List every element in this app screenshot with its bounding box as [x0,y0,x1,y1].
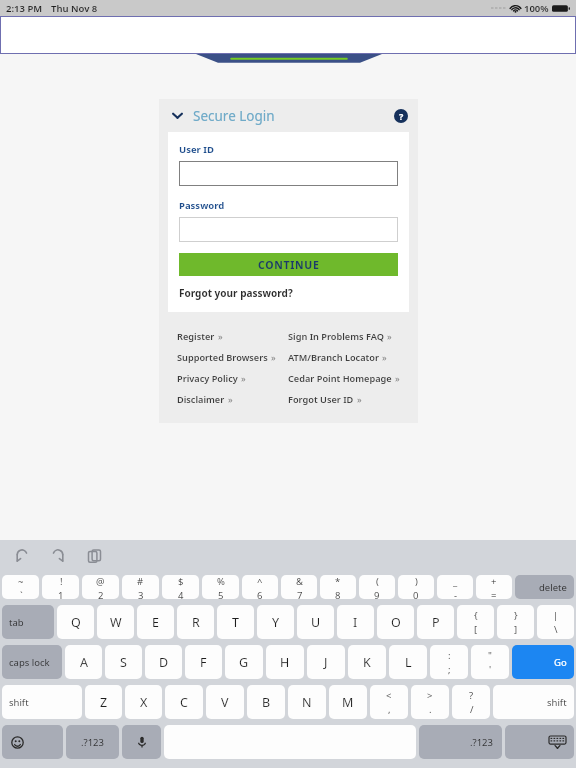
button[interactable]: { [457,605,494,639]
staticText: K [363,654,371,671]
button[interactable]: Y [257,605,294,639]
button[interactable]: ! [42,575,79,599]
button[interactable]: K [348,645,386,679]
button[interactable]: | [537,605,574,639]
staticText: » [218,330,223,343]
staticText: 7 [297,589,303,599]
button[interactable]: Dictation [122,725,161,759]
button[interactable]: H [266,645,304,679]
button[interactable]: Disclaimer [177,389,288,410]
staticText: Forgot your password? [179,286,293,300]
button[interactable]: O [377,605,414,639]
button[interactable]: : [430,645,468,679]
button[interactable]: L [389,645,427,679]
button[interactable] [179,161,398,186]
button[interactable]: D [145,645,182,679]
button[interactable]: I [337,605,374,639]
button[interactable]: Help [394,109,408,123]
staticText: C [180,694,188,711]
button[interactable]: Go [512,645,574,679]
button[interactable]: W [97,605,134,639]
staticText: # [137,575,144,588]
button[interactable]: Z [85,685,122,719]
button[interactable]: Sign In Problems FAQ [288,326,408,347]
staticText: » [241,372,246,385]
button[interactable]: CONTINUE [179,253,398,276]
staticText: / [470,703,474,716]
button[interactable]: ^ [242,575,278,599]
staticText: 2:13 PM [6,2,43,15]
button[interactable]: Hide keyboard [505,725,574,759]
button[interactable]: R [177,605,214,639]
button[interactable]: T [217,605,254,639]
button[interactable]: " [471,645,509,679]
button[interactable]: ? [452,685,490,719]
staticText: Password [179,199,225,212]
staticText: N [302,694,312,711]
button[interactable]: tab [2,605,54,639]
button[interactable]: .?123 [66,725,119,759]
button[interactable]: ) [398,575,434,599]
button[interactable]: .?123 [419,725,502,759]
button[interactable]: Cedar Point Homepage [288,368,408,389]
staticText: G [239,654,249,671]
button[interactable]: Q [57,605,94,639]
button[interactable]: M [329,685,367,719]
staticText: 5 [218,589,224,599]
staticText: Disclaimer [177,393,225,406]
button[interactable]: E [137,605,174,639]
button[interactable]: Forgot your password? [179,286,293,300]
button[interactable]: & [281,575,317,599]
button[interactable]: shift [2,685,82,719]
button[interactable]: % [202,575,239,599]
button[interactable]: > [411,685,449,719]
staticText: » [395,372,400,385]
staticText: R [192,614,200,631]
button[interactable]: ~ [2,575,39,599]
staticText: » [382,351,387,364]
button[interactable]: J [307,645,345,679]
staticText: [ [474,623,478,636]
button[interactable]: Paste [84,546,104,566]
button[interactable]: * [320,575,356,599]
button[interactable]: Emoji [2,725,63,759]
button[interactable]: caps lock [2,645,62,679]
staticText: Forgot User ID [288,393,354,406]
button[interactable]: < [370,685,408,719]
button[interactable]: ATM/Branch Locator [288,347,408,368]
button[interactable]: U [297,605,334,639]
button[interactable]: Supported Browsers [177,347,288,368]
button[interactable]: S [105,645,142,679]
button[interactable]: Secure Login [159,99,418,132]
button[interactable]: A [65,645,102,679]
button[interactable]: shift [493,685,574,719]
staticText: W [110,614,122,631]
staticText: 6 [257,589,263,599]
button[interactable]: delete [515,575,574,599]
button[interactable]: + [476,575,512,599]
button[interactable]: Privacy Policy [177,368,288,389]
button[interactable]: P [417,605,454,639]
button[interactable]: @ [82,575,119,599]
button[interactable]: _ [437,575,473,599]
button[interactable]: undo [12,546,32,566]
button[interactable]: } [497,605,534,639]
button[interactable]: redo [48,546,68,566]
button[interactable]: ( [359,575,395,599]
button[interactable]: Register [177,326,288,347]
staticText: V [221,694,229,711]
button[interactable]: N [288,685,326,719]
staticText: O [391,614,401,631]
button[interactable]: $ [162,575,199,599]
button[interactable] [179,217,398,242]
button[interactable]: G [225,645,263,679]
staticText: tab [9,616,24,629]
button[interactable]: X [125,685,162,719]
button[interactable]: V [206,685,244,719]
button[interactable]: Forgot User ID [288,389,408,410]
button[interactable]: # [122,575,159,599]
button[interactable]: B [247,685,285,719]
button[interactable]: C [165,685,203,719]
button[interactable]: F [185,645,222,679]
